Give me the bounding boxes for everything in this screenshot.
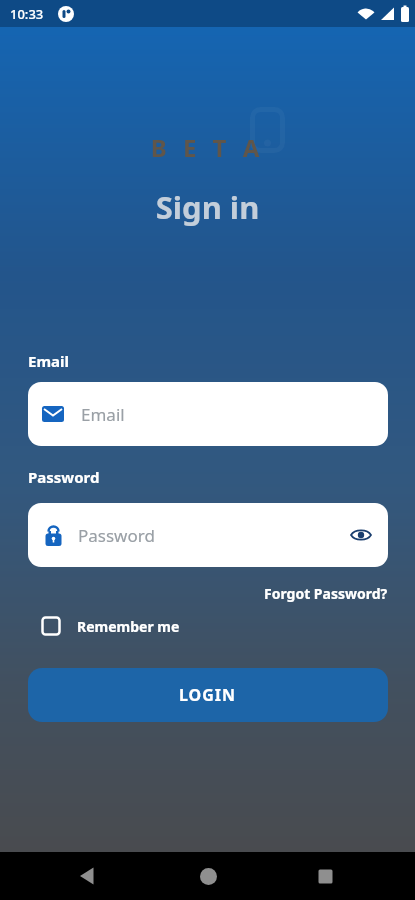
staticText: LOGIN [179, 684, 237, 706]
staticText: Sign in [0, 186, 415, 228]
button[interactable] [309, 860, 341, 892]
staticText: Email [81, 403, 125, 426]
button[interactable]: Remember me [41, 616, 180, 636]
button[interactable]: Email [28, 382, 388, 446]
staticText: Password [78, 524, 155, 547]
staticText: B E T A [0, 131, 415, 164]
button[interactable] [192, 860, 224, 892]
staticText: Password [28, 467, 100, 487]
staticText: 10:33 [10, 5, 44, 23]
button[interactable]: Password [28, 503, 388, 567]
button[interactable] [71, 860, 103, 892]
button[interactable]: LOGIN [28, 668, 388, 722]
staticText: Remember me [77, 617, 180, 636]
staticText: Email [28, 351, 69, 371]
button[interactable]: Forgot Password? [264, 584, 388, 603]
